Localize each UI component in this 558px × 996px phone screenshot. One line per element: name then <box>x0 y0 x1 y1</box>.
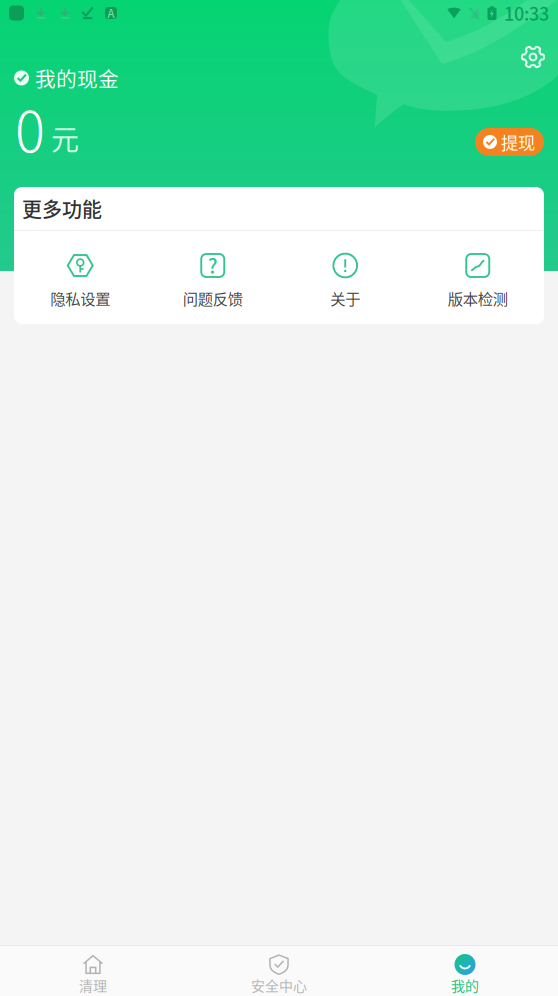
staticText: 版本检测 <box>448 287 508 309</box>
staticText: A <box>107 5 114 21</box>
staticText: 安全中心 <box>251 975 307 995</box>
staticText: 更多功能 <box>22 194 102 223</box>
staticText: ? <box>208 250 218 279</box>
staticText: 10:33 <box>504 0 549 26</box>
button[interactable]: 提现 <box>475 128 544 156</box>
staticText: 我的 <box>451 975 479 995</box>
button[interactable]: 设置 <box>513 37 553 77</box>
staticText: 提现 <box>501 129 535 154</box>
staticText: 清理 <box>79 975 107 995</box>
staticText: 0 <box>15 87 45 168</box>
button[interactable]: 版本检测 <box>411 253 544 309</box>
button[interactable]: 关于 <box>279 253 411 309</box>
staticText: 关于 <box>330 287 360 309</box>
button[interactable]: 安全中心 <box>186 954 372 995</box>
staticText: 我的现金 <box>35 63 119 93</box>
button[interactable]: 清理 <box>0 954 186 995</box>
button[interactable]: 我的 <box>372 954 558 995</box>
button[interactable]: ? <box>146 253 279 309</box>
staticText: 元 <box>51 118 79 158</box>
button[interactable]: 隐私设置 <box>14 253 146 309</box>
staticText: 隐私设置 <box>50 287 110 309</box>
staticText: 问题反馈 <box>183 287 243 309</box>
